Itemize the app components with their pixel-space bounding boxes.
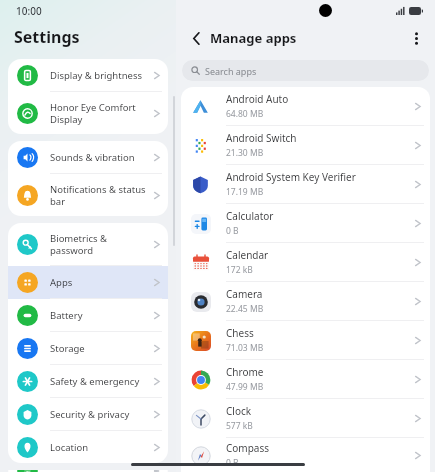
button[interactable]: Android System Key Verifier	[181, 165, 430, 204]
staticText: Display & brightness	[50, 69, 154, 82]
button[interactable]: Honor Eye Comfort Display	[8, 92, 168, 134]
staticText: Location	[50, 441, 154, 454]
staticText: Storage	[50, 342, 154, 355]
staticText: 172 kB	[226, 264, 253, 276]
staticText: 0 B	[226, 225, 239, 237]
button[interactable]: Location	[8, 431, 168, 463]
staticText: Honor Eye Comfort Display	[50, 101, 154, 126]
button[interactable]: Back	[186, 28, 206, 48]
button[interactable]: Notifications & status bar	[8, 174, 168, 216]
staticText: 47.99 MB	[226, 381, 264, 393]
staticText: Security & privacy	[50, 408, 154, 421]
staticText: 22.45 MB	[226, 303, 264, 315]
staticText: Camera	[226, 287, 263, 301]
button[interactable]: Calculator	[181, 204, 430, 243]
staticText: Safety & emergency	[50, 375, 154, 388]
button[interactable]: Search apps	[182, 60, 429, 81]
staticText: Calculator	[226, 209, 274, 223]
button[interactable]: Apps	[8, 266, 168, 299]
staticText: Search apps	[205, 65, 257, 77]
staticText: Apps	[50, 276, 154, 289]
button[interactable]: Display & brightness	[8, 59, 168, 92]
button[interactable]: Android Auto	[181, 87, 430, 126]
button[interactable]: Clock	[181, 399, 430, 438]
staticText: Android System Key Verifier	[226, 170, 356, 184]
button[interactable]: Camera	[181, 282, 430, 321]
staticText: 10:00	[16, 4, 42, 18]
button[interactable]: Digital Wellbeing and parental controls	[8, 470, 168, 472]
staticText: Biometrics & password	[50, 232, 154, 257]
staticText: Manage apps	[210, 29, 297, 47]
button[interactable]: Android Switch	[181, 126, 430, 165]
staticText: Settings	[14, 26, 80, 48]
staticText: Sounds & vibration	[50, 151, 154, 164]
button[interactable]: Security & privacy	[8, 398, 168, 431]
staticText: Chess	[226, 326, 254, 340]
staticText: Clock	[226, 404, 252, 418]
staticText: 0 B	[226, 457, 239, 469]
staticText: Android Switch	[226, 131, 297, 145]
staticText: 71.03 MB	[226, 342, 264, 354]
button[interactable]: Storage	[8, 332, 168, 365]
staticText: Compass	[226, 441, 270, 455]
staticText: 64.80 MB	[226, 108, 264, 120]
staticText: Battery	[50, 309, 154, 322]
button[interactable]: Chess	[181, 321, 430, 360]
staticText: Chrome	[226, 365, 264, 379]
staticText: 17.19 MB	[226, 186, 264, 198]
button[interactable]: Safety & emergency	[8, 365, 168, 398]
staticText: Calendar	[226, 248, 269, 262]
button[interactable]: Biometrics & password	[8, 223, 168, 266]
button[interactable]: Chrome	[181, 360, 430, 399]
staticText: Android Auto	[226, 92, 289, 106]
staticText: Notifications & status bar	[50, 183, 154, 208]
button[interactable]: Calendar	[181, 243, 430, 282]
staticText: 577 kB	[226, 420, 253, 432]
staticText: 21.30 MB	[226, 147, 264, 159]
button[interactable]: More options	[405, 27, 427, 49]
button[interactable]: Sounds & vibration	[8, 141, 168, 174]
button[interactable]: Compass	[181, 438, 430, 472]
button[interactable]: Battery	[8, 299, 168, 332]
